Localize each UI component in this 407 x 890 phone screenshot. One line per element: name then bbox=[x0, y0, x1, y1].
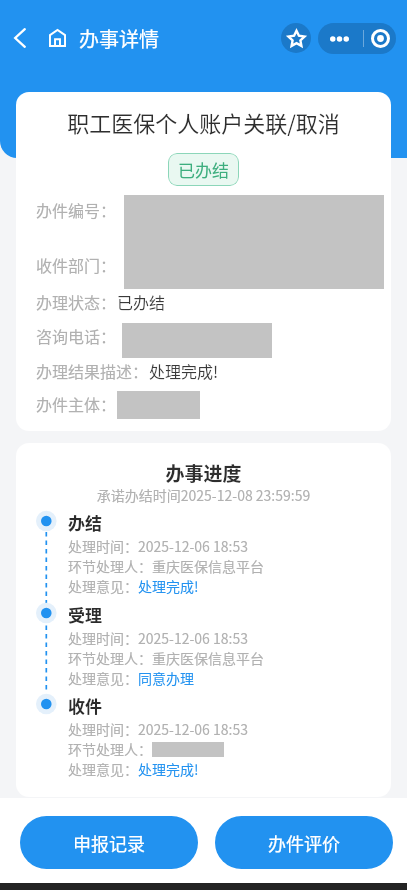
staticText: 环节处理人： bbox=[68, 556, 152, 576]
staticText: 2025-12-06 18:53 bbox=[138, 628, 248, 648]
button[interactable]: Home bbox=[42, 23, 72, 53]
staticText: 申报记录 bbox=[73, 830, 145, 856]
staticText: 同意办理 bbox=[138, 668, 194, 688]
staticText: 处理意见： bbox=[68, 668, 138, 688]
staticText: 办件编号： bbox=[36, 198, 117, 221]
staticText: 收件 bbox=[68, 693, 102, 718]
staticText: 办事进度 bbox=[16, 459, 391, 487]
staticText: 处理完成! bbox=[138, 759, 199, 779]
staticText: 办理结果描述： bbox=[36, 359, 149, 382]
staticText: 咨询电话： bbox=[36, 324, 117, 347]
staticText: 办件主体： bbox=[36, 392, 117, 415]
button[interactable]: More bbox=[318, 23, 363, 54]
staticText: 收件部门： bbox=[36, 253, 117, 276]
button[interactable]: Back bbox=[5, 23, 35, 53]
button[interactable]: 申报记录 bbox=[20, 816, 198, 869]
staticText: 环节处理人： bbox=[68, 648, 152, 668]
staticText: 办事详情 bbox=[79, 24, 159, 53]
staticText: 处理意见： bbox=[68, 576, 138, 596]
staticText: 环节处理人： bbox=[68, 739, 152, 759]
staticText: 2025-12-06 18:53 bbox=[138, 536, 248, 556]
staticText: 处理完成! bbox=[149, 359, 219, 382]
staticText: 承诺办结时间2025-12-08 23:59:59 bbox=[16, 485, 391, 505]
staticText: 已办结 bbox=[117, 290, 166, 313]
button[interactable]: Favorite bbox=[281, 23, 311, 53]
staticText: 职工医保个人账户关联/取消 bbox=[16, 106, 391, 138]
button[interactable]: Close bbox=[364, 23, 396, 54]
button[interactable]: 办件评价 bbox=[215, 816, 393, 869]
staticText: 重庆医保信息平台 bbox=[152, 556, 264, 576]
staticText: 已办结 bbox=[178, 157, 229, 182]
staticText: 办件评价 bbox=[268, 830, 340, 856]
staticText: 处理时间： bbox=[68, 536, 138, 556]
staticText: 办理状态： bbox=[36, 290, 117, 313]
staticText: 受理 bbox=[68, 602, 102, 627]
staticText: 处理意见： bbox=[68, 759, 138, 779]
button[interactable]: 已办结 bbox=[168, 153, 239, 186]
staticText: 处理完成! bbox=[138, 576, 199, 596]
staticText: 处理时间： bbox=[68, 628, 138, 648]
staticText: 重庆医保信息平台 bbox=[152, 648, 264, 668]
staticText: 处理时间： bbox=[68, 719, 138, 739]
staticText: 办结 bbox=[68, 510, 102, 535]
staticText: 2025-12-06 18:53 bbox=[138, 719, 248, 739]
